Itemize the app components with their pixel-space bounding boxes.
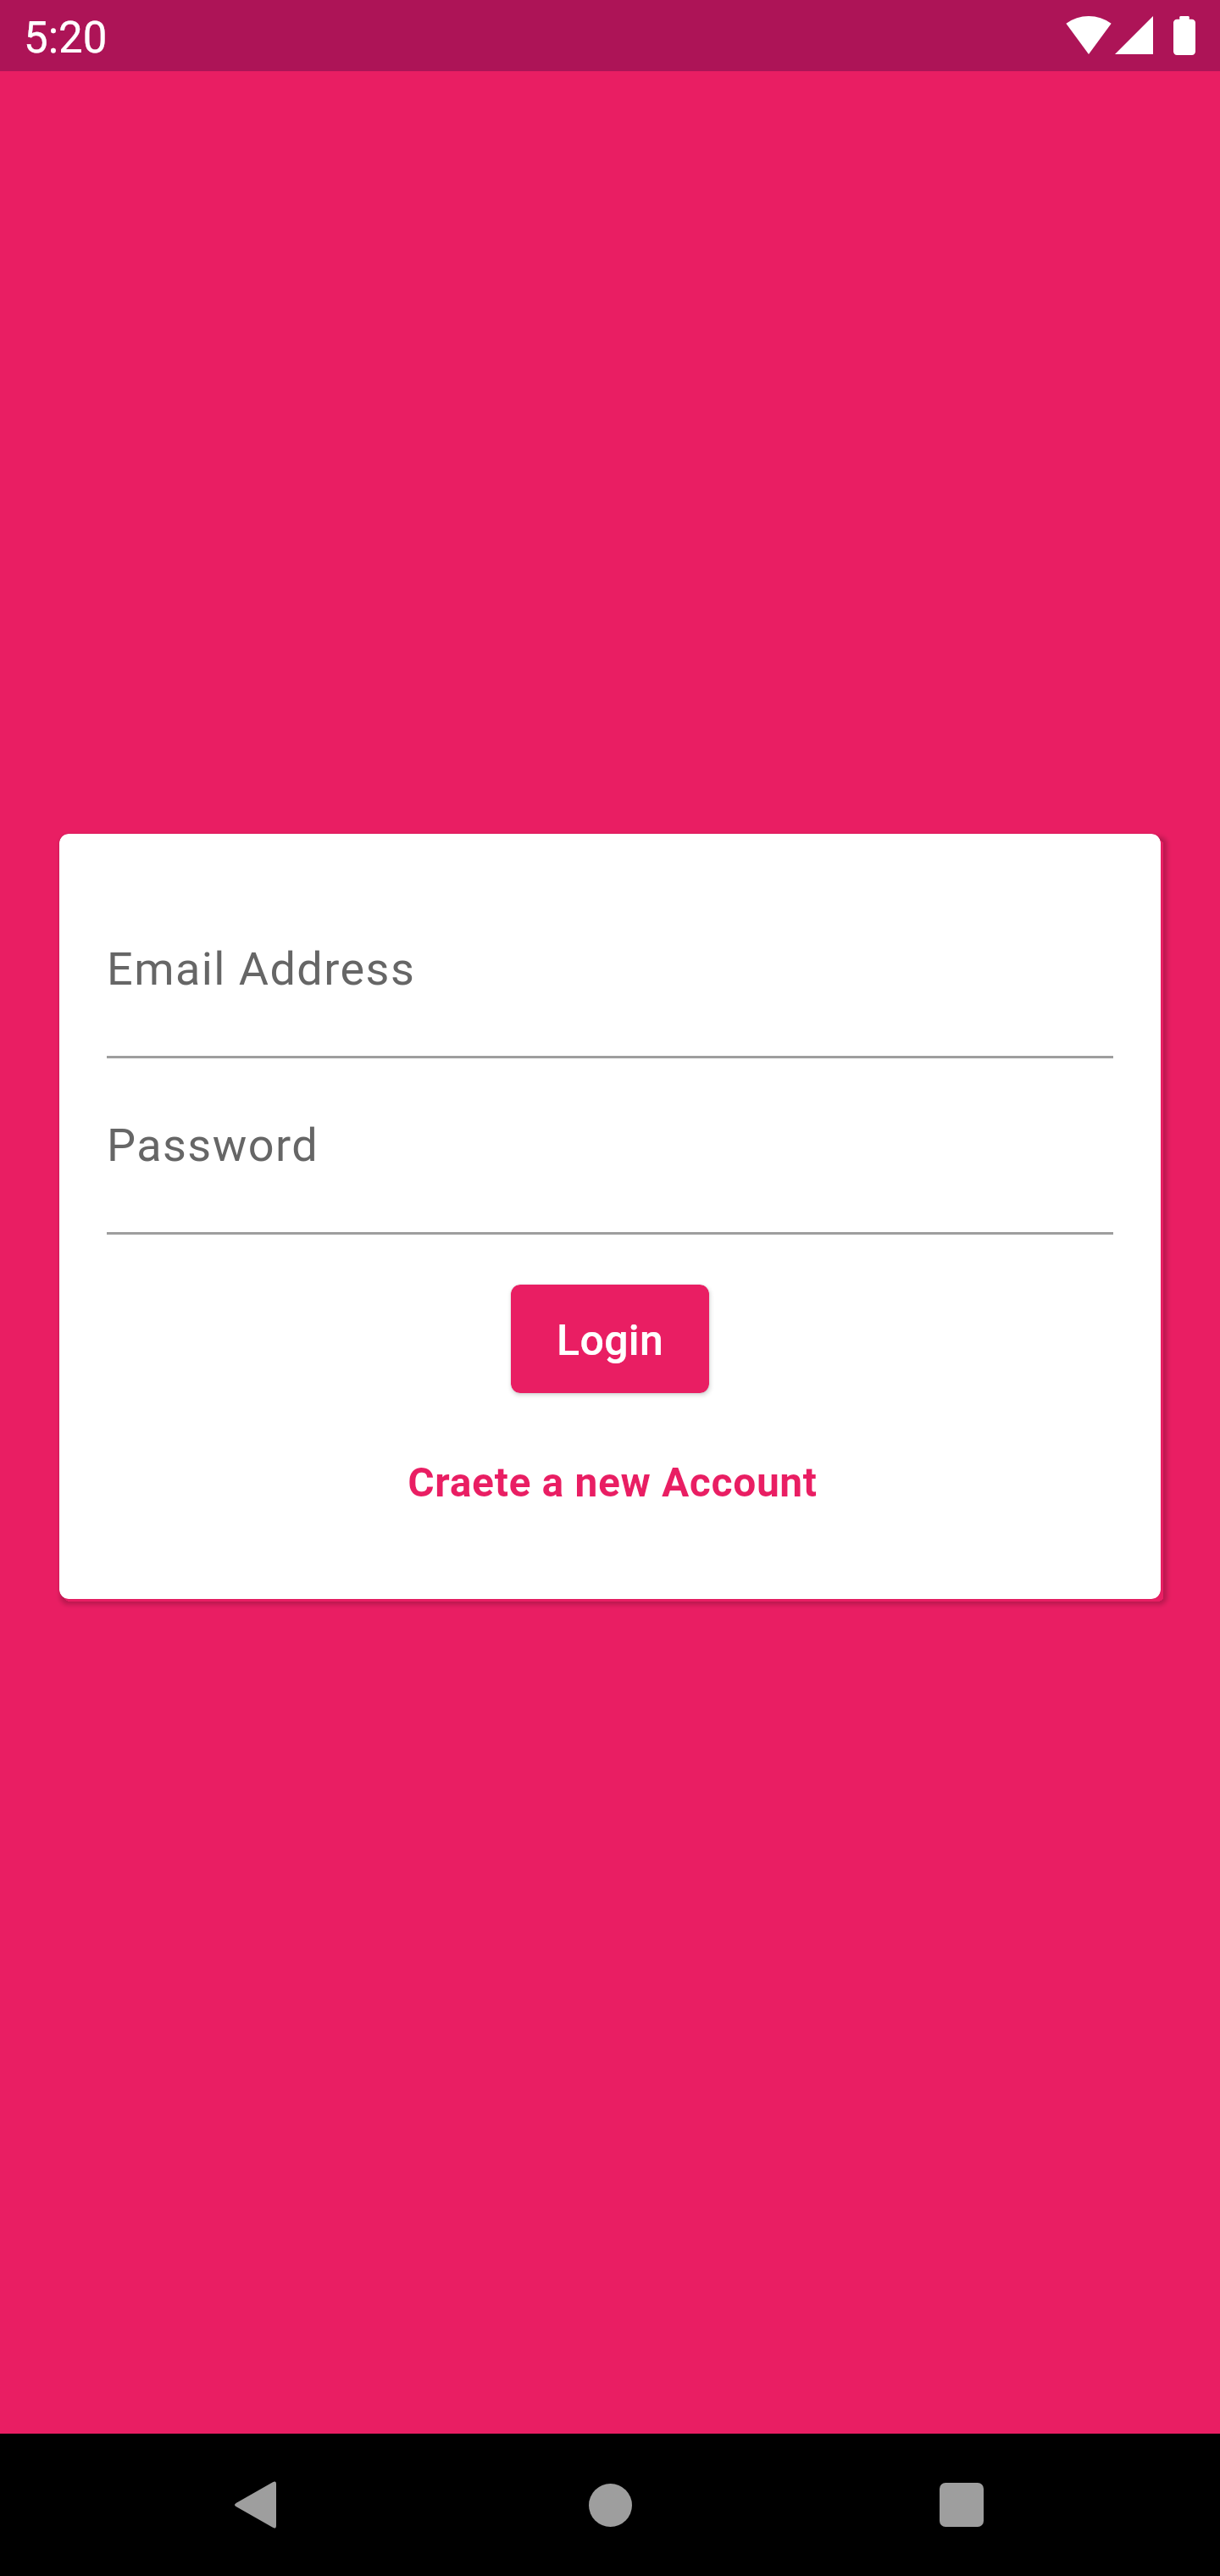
other: Wi-Fi signal [1066,16,1112,54]
button[interactable]: Back [195,2446,313,2564]
button[interactable]: Recent apps [902,2446,1021,2564]
staticText: Email Address [107,942,416,996]
button[interactable]: Home [551,2446,669,2564]
button[interactable]: Craete a new Account [387,1448,838,1516]
button[interactable]: Email Address [107,937,1113,1061]
other: Mobile signal [1115,16,1153,54]
staticText: Craete a new Account [408,1458,818,1506]
button[interactable]: Login [511,1285,709,1393]
staticText: 5:20 [24,13,108,64]
staticText: Password [107,1119,319,1172]
staticText: Login [557,1316,663,1366]
other: Battery [1173,16,1195,55]
button[interactable]: Password [107,1113,1113,1237]
